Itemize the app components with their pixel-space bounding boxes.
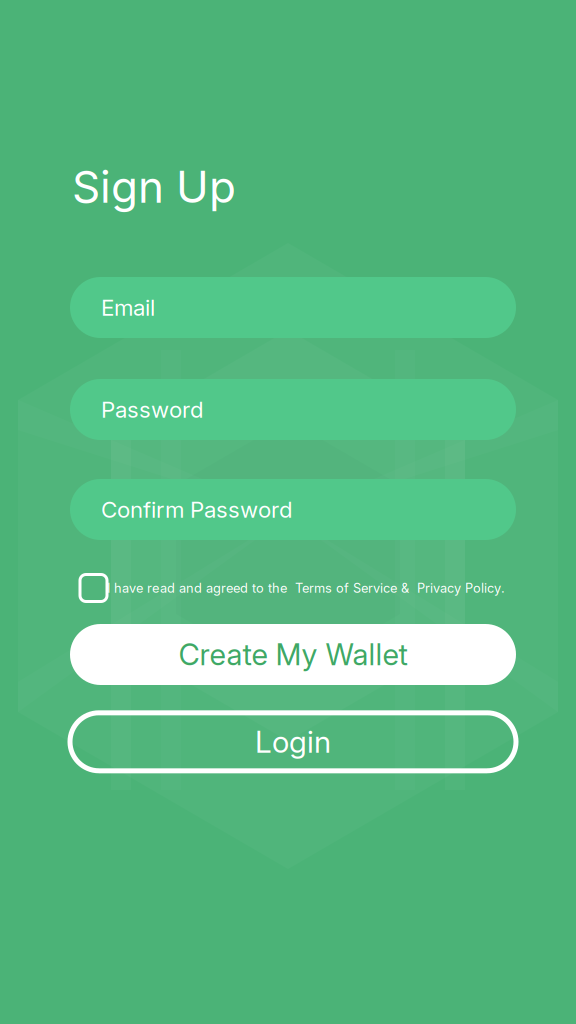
staticText: Login [255, 724, 331, 760]
staticText: Create My Wallet [178, 637, 407, 672]
staticText: Confirm Password [101, 496, 293, 523]
staticText: Email [101, 294, 155, 321]
button[interactable]: Login [70, 713, 516, 771]
staticText: Sign Up [72, 160, 236, 213]
staticText: I have read and agreed to the Terms of S… [107, 580, 505, 596]
button[interactable]: Create My Wallet [70, 624, 516, 685]
button[interactable]: I have read and agreed to the Terms of S… [80, 574, 505, 601]
staticText: Password [101, 396, 204, 423]
